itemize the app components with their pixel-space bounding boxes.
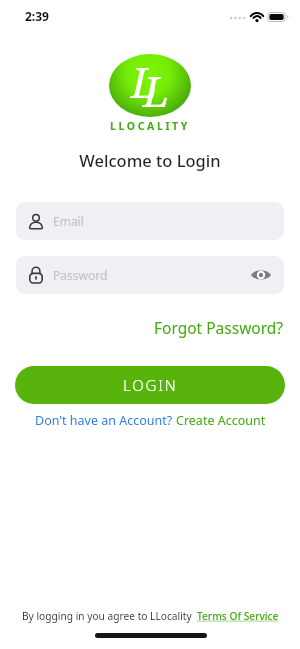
button[interactable]: LOGIN — [15, 366, 285, 404]
button[interactable]: Password — [16, 256, 284, 294]
button[interactable]: Don't have an Account? — [35, 412, 266, 429]
staticText: 2:39 — [25, 8, 49, 24]
staticText: L — [131, 53, 158, 110]
staticText: Don't have an Account? — [35, 412, 176, 429]
staticText: LOGIN — [123, 375, 178, 395]
staticText: By logging in you agree to LLocality — [22, 609, 197, 623]
staticText: Create Account — [176, 412, 266, 429]
staticText: Welcome to Login — [0, 149, 300, 171]
staticText: Password — [53, 267, 250, 283]
staticText: Email — [53, 213, 84, 229]
staticText: LLOCALITY — [0, 119, 300, 133]
staticText: L — [143, 62, 170, 119]
button[interactable]: Forgot Password? — [154, 317, 284, 338]
button[interactable] — [250, 268, 272, 282]
button[interactable]: Email — [16, 202, 284, 240]
button[interactable]: Terms Of Service — [197, 609, 279, 623]
